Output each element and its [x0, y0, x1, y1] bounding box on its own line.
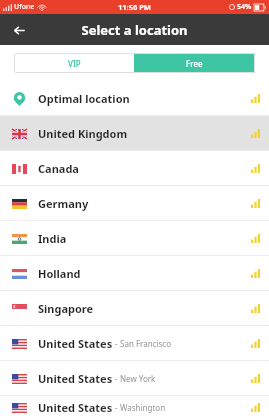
button[interactable]: United States — [0, 361, 269, 395]
staticText: United States — [38, 400, 113, 415]
button[interactable]: Free — [134, 53, 255, 73]
button[interactable]: Singapore — [0, 291, 269, 325]
button[interactable]: Canada — [0, 151, 269, 185]
staticText: United Kingdom — [38, 126, 128, 141]
staticText: - — [113, 402, 120, 413]
button[interactable]: Holland — [0, 256, 269, 290]
staticText: San Francisco — [120, 338, 172, 349]
staticText: Holland — [38, 266, 81, 281]
button[interactable]: United States — [0, 396, 269, 419]
button[interactable]: Optimal location — [0, 81, 269, 115]
staticText: United States — [38, 336, 113, 351]
button[interactable]: United Kingdom — [0, 116, 269, 150]
staticText: United States — [38, 371, 113, 386]
staticText: Optimal location — [38, 91, 130, 106]
staticText: Washington — [120, 402, 166, 413]
staticText: - — [113, 373, 120, 384]
staticText: New York — [120, 373, 156, 384]
button[interactable]: VIP — [14, 53, 134, 73]
button[interactable]: Back — [8, 19, 30, 41]
button[interactable]: Germany — [0, 186, 269, 220]
staticText: Germany — [38, 196, 89, 211]
button[interactable]: India — [0, 221, 269, 255]
staticText: 11:56 PM — [118, 2, 151, 12]
staticText: 54% — [237, 2, 252, 12]
staticText: VIP — [68, 58, 81, 69]
staticText: Canada — [38, 161, 79, 176]
staticText: Select a location — [81, 21, 188, 39]
staticText: Ufone — [14, 2, 35, 12]
staticText: Free — [186, 58, 203, 69]
staticText: Singapore — [38, 301, 94, 316]
staticText: India — [38, 231, 67, 246]
staticText: - — [113, 338, 120, 349]
button[interactable]: United States — [0, 326, 269, 360]
